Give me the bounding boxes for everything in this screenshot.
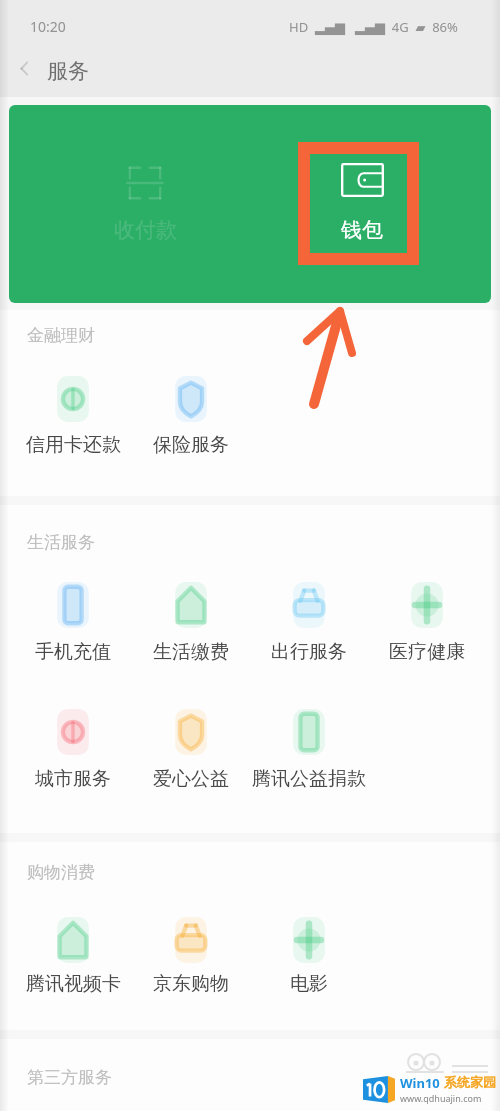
staticText: 10:20 [30, 17, 66, 36]
button[interactable]: 腾讯视频卡 [14, 916, 132, 998]
staticText: 钱包 [341, 217, 383, 243]
button[interactable]: 收付款 [98, 163, 192, 243]
button[interactable]: 信用卡还款 [14, 375, 132, 457]
staticText: 城市服务 [35, 767, 111, 791]
staticText: 保险服务 [153, 433, 229, 457]
staticText: 信用卡还款 [26, 433, 121, 457]
staticText: 金融理财 [27, 325, 95, 346]
staticText: HD ▂▄▆ ▂▄▆ 4G ▰ 86% [289, 18, 458, 36]
button[interactable]: 电影 [250, 916, 368, 998]
staticText: 生活服务 [27, 532, 95, 553]
button[interactable]: 服务 [44, 52, 104, 90]
staticText: 服务 [47, 58, 89, 84]
staticText: 医疗健康 [389, 640, 465, 664]
button[interactable]: 爱心公益 [132, 708, 250, 790]
staticText: 第三方服务 [27, 1067, 112, 1088]
button[interactable]: 保险服务 [132, 375, 250, 457]
staticText: 生活缴费 [153, 640, 229, 664]
button[interactable]: 手机充值 [14, 581, 132, 663]
staticText: 电影 [290, 972, 328, 996]
button[interactable]: 腾讯公益捐款 [250, 708, 368, 790]
staticText: 收付款 [114, 217, 177, 243]
staticText: 购物消费 [27, 862, 95, 883]
staticText: 腾讯公益捐款 [252, 767, 366, 791]
button[interactable]: 钱包 [315, 163, 409, 243]
staticText: 手机充值 [35, 640, 111, 664]
staticText: 京东购物 [153, 972, 229, 996]
button[interactable]: 医疗健康 [368, 581, 486, 663]
staticText: 爱心公益 [153, 767, 229, 791]
button[interactable]: 出行服务 [250, 581, 368, 663]
staticText: 腾讯视频卡 [26, 972, 121, 996]
button[interactable]: 生活缴费 [132, 581, 250, 663]
button[interactable]: 京东购物 [132, 916, 250, 998]
staticText: Win10 [400, 1074, 444, 1092]
staticText: www.qdhuajin.com [400, 1092, 482, 1104]
button[interactable]: 返回 [4, 48, 44, 88]
staticText: 出行服务 [271, 640, 347, 664]
staticText: 系统家园 [444, 1074, 496, 1090]
button[interactable]: 城市服务 [14, 708, 132, 790]
